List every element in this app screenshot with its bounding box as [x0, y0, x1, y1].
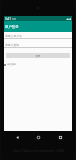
button[interactable]: Back [11, 133, 23, 141]
button[interactable]: Recents [54, 133, 66, 141]
staticText: https://blog.csdn.net/weixin_4388 [13, 149, 64, 153]
staticText: 3:41 [5, 17, 11, 21]
button[interactable]: Home [32, 133, 44, 141]
button[interactable]: 用户登录 [4, 21, 72, 32]
button[interactable]: 登录 [6, 53, 70, 58]
button[interactable]: 记住密码 [4, 63, 16, 66]
staticText: 用户登录 [5, 25, 19, 29]
staticText: 记住密码 [7, 63, 16, 66]
staticText: 请输入密码 [5, 43, 19, 47]
staticText: 请输入用户名 [5, 34, 22, 38]
staticText: 登录 [35, 54, 41, 57]
